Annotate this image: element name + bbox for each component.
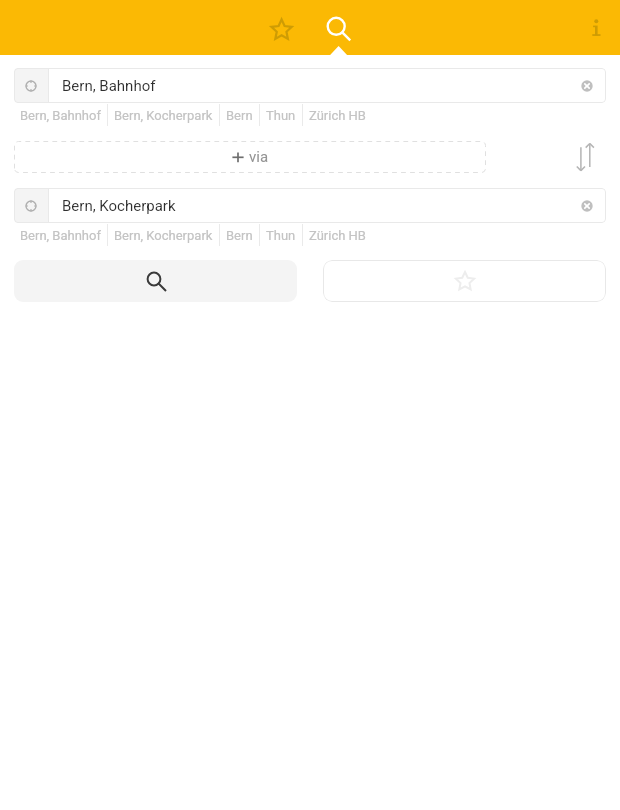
staticText: Bern	[226, 228, 253, 243]
button[interactable]: Bern	[220, 224, 259, 246]
button[interactable]: Bern, Bahnhof	[49, 68, 568, 103]
staticText: Bern, Bahnhof	[20, 108, 101, 123]
button[interactable]: via	[14, 141, 486, 173]
button[interactable]: Info	[575, 6, 619, 50]
button[interactable]: Clear	[568, 188, 606, 223]
button[interactable]: Clear	[568, 68, 606, 103]
staticText: via	[249, 148, 269, 166]
button[interactable]: Thun	[260, 104, 302, 126]
button[interactable]: Bern, Kocherpark	[49, 188, 568, 223]
button[interactable]: Bern, Kocherpark	[108, 224, 219, 246]
button[interactable]: Bern, Kocherpark	[108, 104, 219, 126]
staticText: Bern, Kocherpark	[114, 108, 213, 123]
staticText: Bern, Kocherpark	[62, 197, 176, 215]
button[interactable]: Search	[316, 6, 361, 50]
staticText: Bern, Bahnhof	[62, 77, 156, 95]
button[interactable]: Swap departure and destination	[568, 141, 620, 173]
staticText: Bern	[226, 108, 253, 123]
button[interactable]: Bern, Bahnhof	[14, 104, 107, 126]
staticText: Bern, Kocherpark	[114, 228, 213, 243]
staticText: Bern, Bahnhof	[20, 228, 101, 243]
button[interactable]: Save as favourite	[323, 260, 606, 302]
button[interactable]: Search connections	[14, 260, 297, 302]
button[interactable]: Bern, Bahnhof	[14, 224, 107, 246]
button[interactable]: Favourites	[259, 6, 304, 50]
staticText: Thun	[266, 228, 296, 243]
button[interactable]: Zürich HB	[303, 104, 372, 126]
button[interactable]: Use current location	[14, 188, 48, 223]
button[interactable]: Bern	[220, 104, 259, 126]
button[interactable]: Thun	[260, 224, 302, 246]
button[interactable]: Zürich HB	[303, 224, 372, 246]
staticText: Thun	[266, 108, 296, 123]
staticText: Zürich HB	[309, 108, 366, 123]
button[interactable]: Use current location	[14, 68, 48, 103]
staticText: Zürich HB	[309, 228, 366, 243]
